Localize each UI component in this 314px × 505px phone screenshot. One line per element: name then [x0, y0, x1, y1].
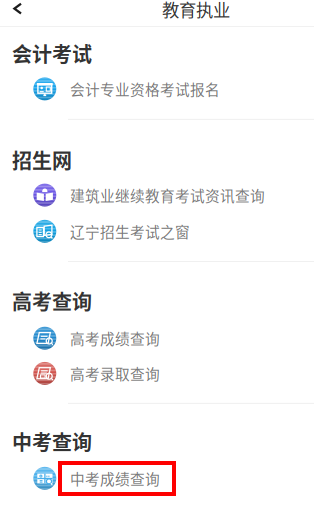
button[interactable]: 辽宁招生考试之窗: [0, 214, 314, 248]
button[interactable]: 中考成绩查询: [0, 461, 314, 495]
staticText: 高考查询: [12, 286, 92, 315]
staticText: 会计专业资格考试报名: [70, 78, 220, 99]
staticText: 高考录取查询: [70, 363, 160, 384]
button[interactable]: Back: [0, 0, 36, 26]
staticText: 教育执业: [162, 0, 230, 22]
staticText: 高考成绩查询: [70, 328, 160, 349]
staticText: 建筑业继续教育考试资讯查询: [70, 184, 265, 206]
button[interactable]: 建筑业继续教育考试资讯查询: [0, 178, 314, 212]
staticText: 会计考试: [12, 39, 92, 68]
staticText: 中考成绩查询: [70, 468, 160, 489]
staticText: 中考查询: [12, 427, 92, 456]
button[interactable]: 高考录取查询: [0, 356, 314, 390]
button[interactable]: 高考成绩查询: [0, 321, 314, 355]
staticText: 辽宁招生考试之窗: [70, 221, 190, 242]
button[interactable]: 会计专业资格考试报名: [0, 72, 314, 106]
staticText: 招生网: [12, 145, 72, 174]
